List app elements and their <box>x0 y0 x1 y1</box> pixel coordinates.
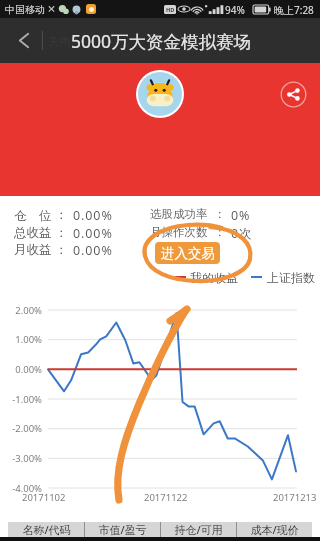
staticText: 总收益 <box>14 225 52 241</box>
button[interactable]: 进入交易 <box>155 242 220 264</box>
staticText: -2.00% <box>0 422 42 435</box>
staticText: -1.00% <box>0 393 42 406</box>
staticText: 5000万大资金模拟赛场 <box>71 29 252 53</box>
staticText: 关闭 <box>48 34 70 48</box>
staticText: 选股成功率 <box>150 207 208 221</box>
staticText: 名称/代码 <box>22 522 71 537</box>
staticText: -3.00% <box>0 452 42 465</box>
staticText: -4.00% <box>0 482 42 495</box>
button[interactable]: 名称/代码 <box>8 522 84 537</box>
staticText: ： <box>214 225 226 239</box>
button[interactable]: 持仓/可用 <box>161 522 236 537</box>
staticText: 中国移动 <box>5 3 45 16</box>
staticText: 0% <box>231 207 251 224</box>
staticText: ： <box>55 207 68 223</box>
button[interactable]: 市值/盈亏 <box>85 522 160 537</box>
staticText: 上证指数 <box>267 270 315 285</box>
staticText: 94% <box>225 3 245 17</box>
staticText: HD <box>166 6 175 13</box>
staticText: 0.00% <box>73 225 113 242</box>
staticText: 我的收益 <box>190 270 238 285</box>
staticText: 月操作次数 <box>150 225 208 239</box>
staticText: 20171102 <box>22 491 66 504</box>
button[interactable]: Share <box>280 81 307 108</box>
staticText: 成本/现价 <box>250 522 299 537</box>
staticText: 月收益 <box>14 242 52 258</box>
button[interactable]: 成本/现价 <box>237 522 312 537</box>
staticText: 2.00% <box>0 304 42 317</box>
staticText: 持仓/可用 <box>174 522 223 537</box>
staticText: 晚上7:28 <box>274 3 314 17</box>
staticText: 0.00% <box>73 207 113 224</box>
staticText: 20171122 <box>144 491 188 504</box>
staticText: 仓 位 <box>14 207 52 224</box>
button[interactable]: Back <box>4 18 44 63</box>
staticText: ： <box>214 207 226 221</box>
staticText: 进入交易 <box>161 245 215 262</box>
staticText: ： <box>55 225 68 241</box>
staticText: 1.00% <box>0 333 42 346</box>
staticText: 0.00% <box>73 242 113 259</box>
staticText: 0次 <box>231 225 253 242</box>
staticText: ： <box>55 242 68 258</box>
staticText: 20171213 <box>273 491 317 504</box>
staticText: 0.00% <box>0 363 42 376</box>
staticText: 市值/盈亏 <box>98 522 147 537</box>
